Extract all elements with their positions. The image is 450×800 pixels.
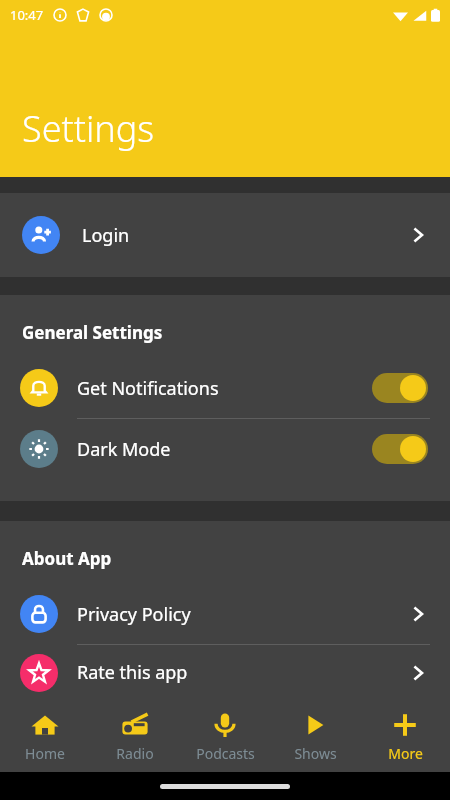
button[interactable]: Dark Mode (0, 419, 450, 479)
button[interactable]: Radio (90, 700, 180, 772)
button[interactable]: Rate this app (0, 645, 450, 700)
button[interactable]: Get Notifications (372, 373, 428, 403)
staticText: General Settings (22, 321, 163, 344)
staticText: Shows (294, 744, 337, 763)
staticText: Privacy Policy (77, 602, 191, 627)
button[interactable]: Login (0, 193, 450, 277)
staticText: Settings (22, 104, 155, 153)
button[interactable]: Shows (270, 700, 360, 772)
staticText: Podcasts (196, 744, 255, 763)
staticText: Rate this app (77, 660, 188, 685)
staticText: Dark Mode (77, 437, 171, 462)
staticText: Get Notifications (77, 376, 219, 401)
staticText: 10:47 (10, 6, 44, 24)
staticText: Login (82, 223, 130, 248)
button[interactable]: More (360, 700, 450, 772)
button[interactable]: Home (0, 700, 90, 772)
staticText: Radio (116, 744, 154, 763)
staticText: More (388, 744, 423, 763)
button[interactable]: Dark Mode (372, 434, 428, 464)
staticText: About App (22, 547, 112, 570)
staticText: Home (25, 744, 65, 763)
button[interactable]: Get Notifications (0, 358, 450, 418)
button[interactable]: Podcasts (180, 700, 270, 772)
button[interactable]: Privacy Policy (0, 584, 450, 644)
